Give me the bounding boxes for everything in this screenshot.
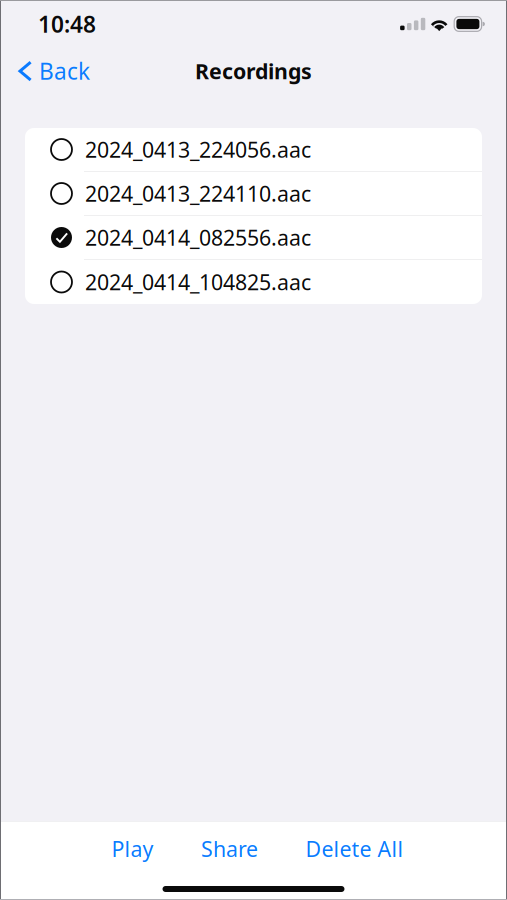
staticText: Back — [39, 56, 90, 86]
button[interactable]: Back — [0, 48, 102, 94]
staticText: 2024_0414_104825.aac — [85, 268, 311, 296]
staticText: Share — [201, 835, 258, 863]
staticText: 10:48 — [38, 9, 96, 39]
button[interactable]: 2024_0413_224056.aac — [25, 128, 482, 172]
staticText: 2024_0413_224056.aac — [85, 135, 311, 164]
staticText: Play — [111, 835, 153, 863]
button[interactable]: 2024_0414_104825.aac — [25, 260, 482, 304]
button[interactable]: 2024_0413_224110.aac — [25, 172, 482, 216]
button[interactable]: 2024_0414_082556.aac — [25, 216, 482, 260]
button[interactable]: Delete All — [305, 822, 403, 873]
staticText: Recordings — [195, 57, 312, 85]
button[interactable]: Play — [111, 822, 153, 873]
staticText: Delete All — [305, 835, 403, 863]
staticText: 2024_0413_224110.aac — [85, 179, 311, 208]
staticText: 2024_0414_082556.aac — [85, 223, 311, 252]
button[interactable]: Share — [201, 822, 258, 873]
